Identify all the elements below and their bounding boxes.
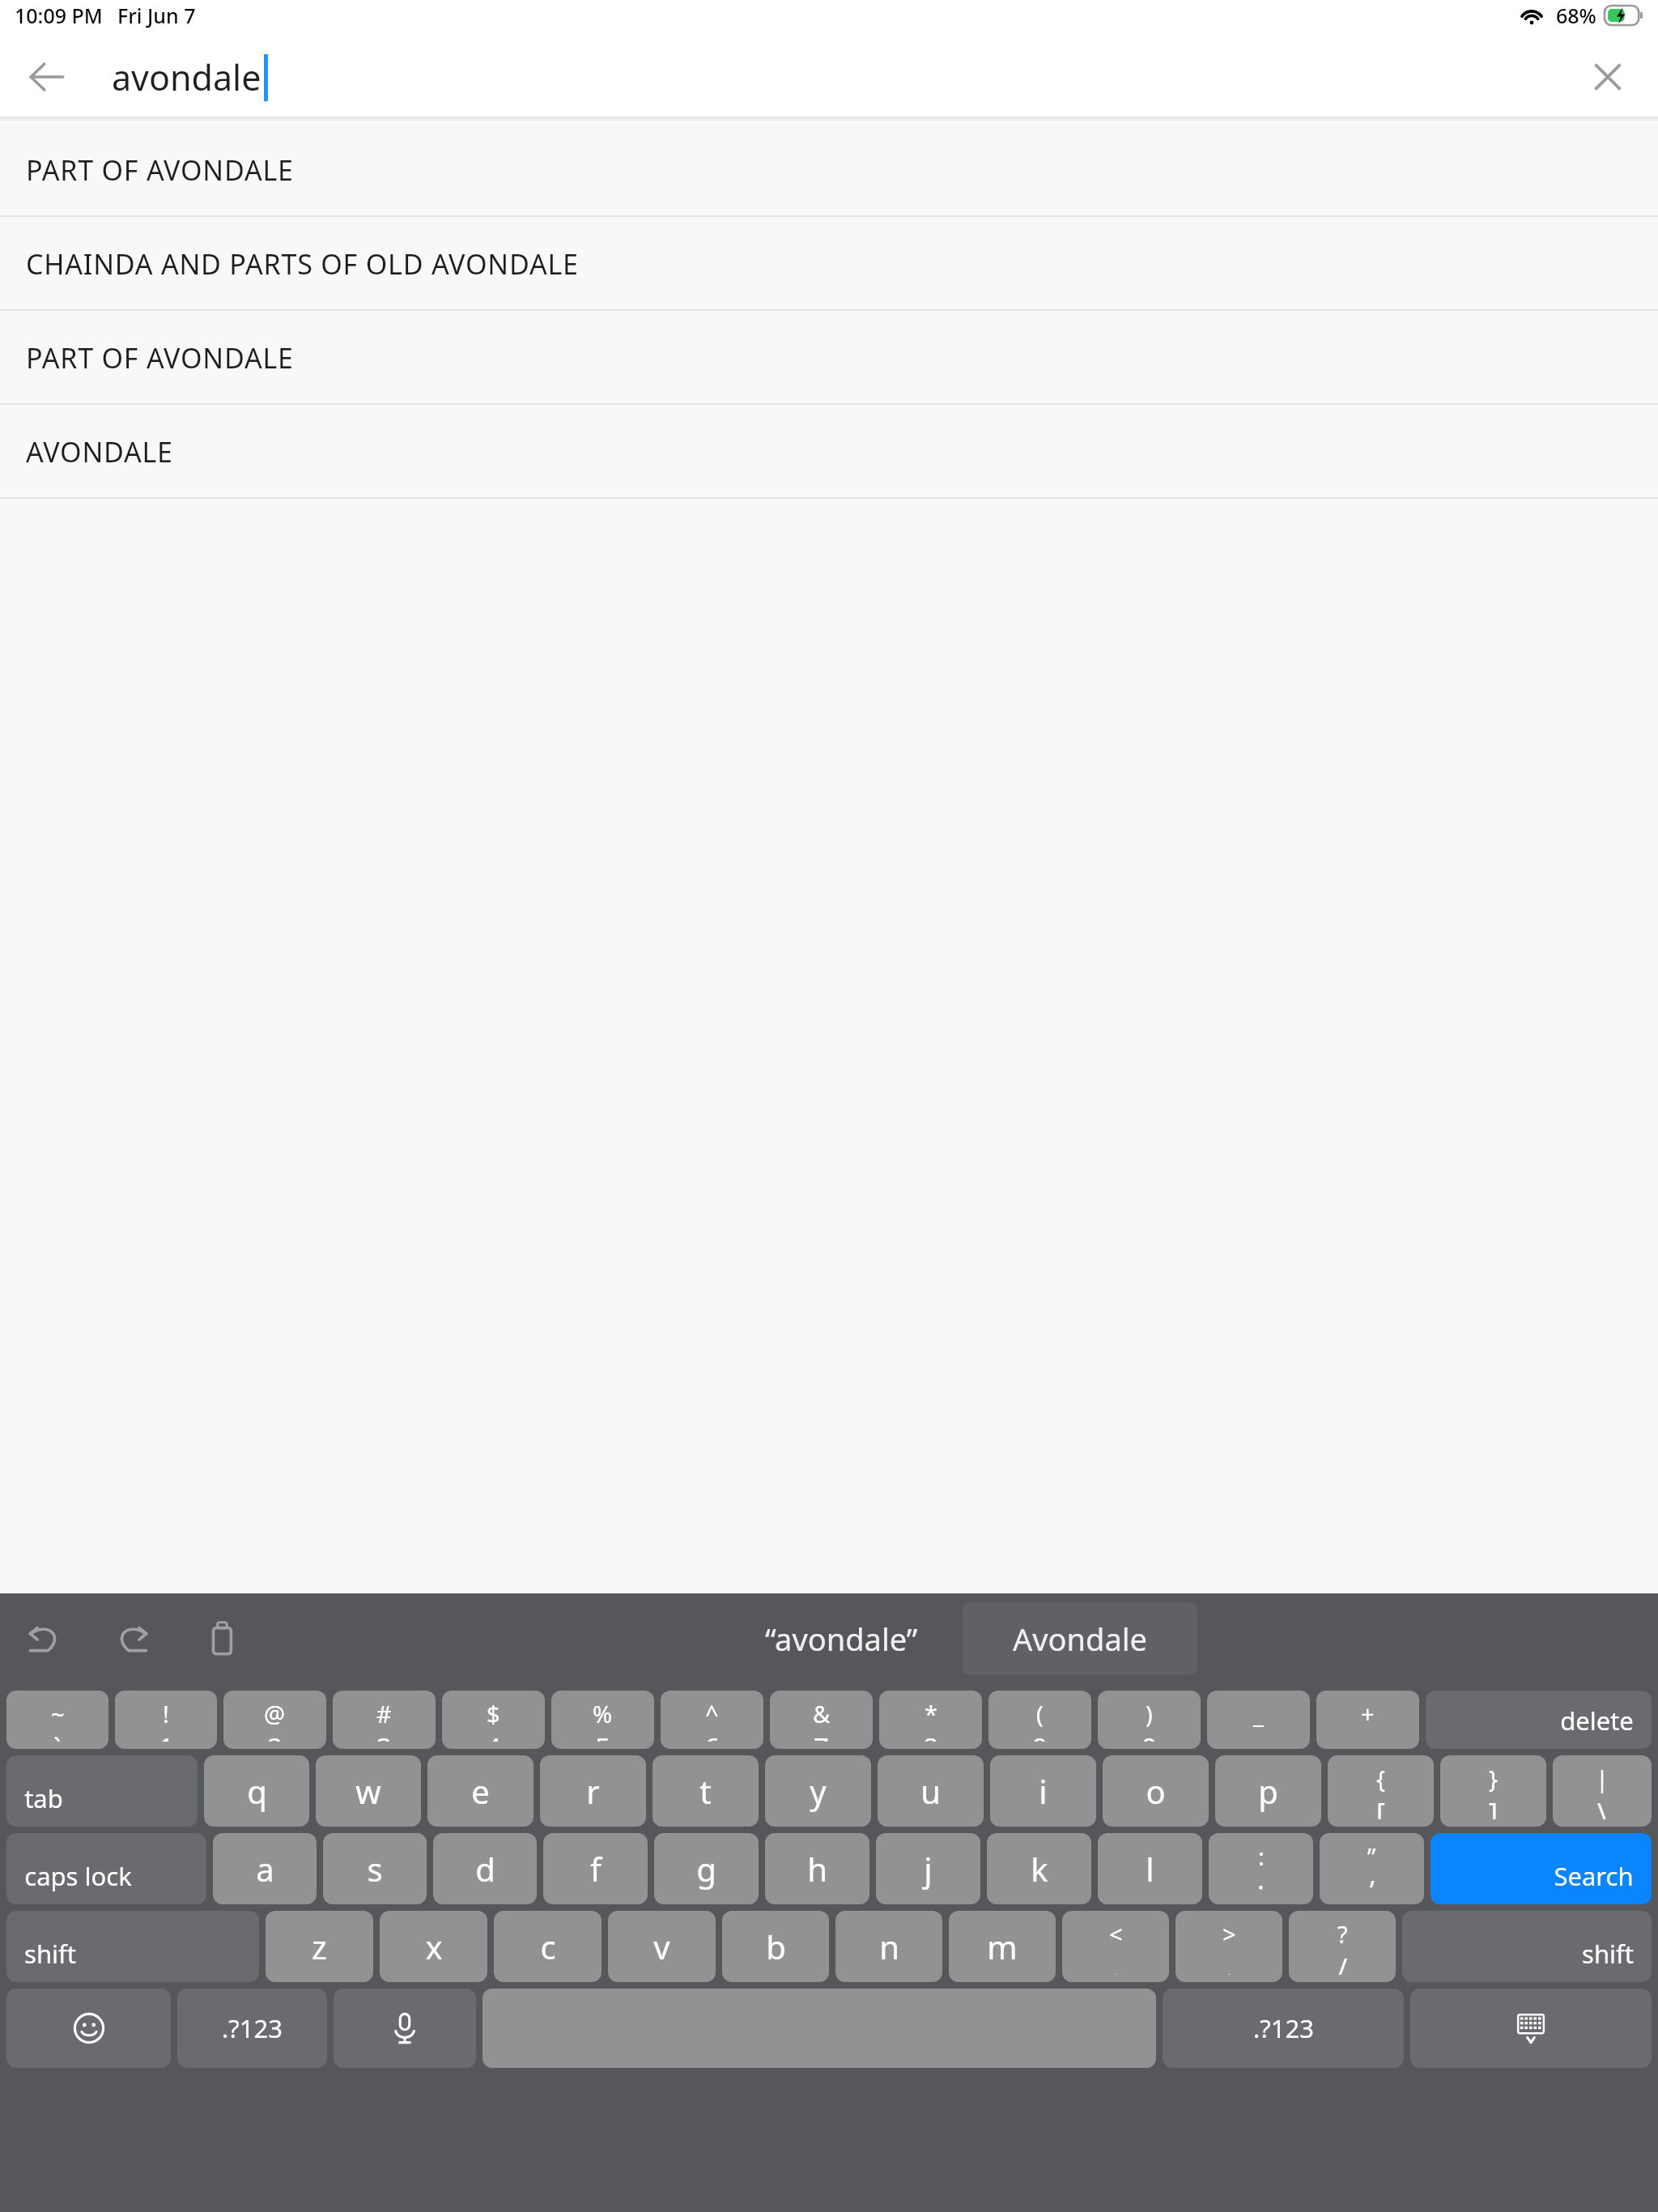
button[interactable]: Redo bbox=[105, 1611, 160, 1666]
staticText: 0 bbox=[1141, 1729, 1157, 1742]
button[interactable]: shift bbox=[1402, 1911, 1652, 1982]
button[interactable]: h bbox=[765, 1833, 869, 1904]
button[interactable]: ? bbox=[1289, 1911, 1396, 1982]
button[interactable]: “avondale” bbox=[720, 1593, 963, 1684]
staticText: q bbox=[247, 1769, 267, 1813]
button[interactable]: tab bbox=[6, 1755, 198, 1827]
staticText: * bbox=[925, 1698, 937, 1729]
button[interactable]: b bbox=[722, 1911, 829, 1982]
button[interactable]: z bbox=[266, 1911, 373, 1982]
button[interactable]: Paste bbox=[196, 1611, 251, 1666]
button[interactable]: Clear search bbox=[1575, 45, 1640, 109]
button[interactable]: : bbox=[1209, 1833, 1313, 1904]
button[interactable]: y bbox=[765, 1755, 871, 1827]
staticText: ! bbox=[163, 1698, 169, 1729]
button[interactable]: e bbox=[427, 1755, 534, 1827]
button[interactable]: v bbox=[608, 1911, 716, 1982]
button[interactable]: _ bbox=[1207, 1691, 1310, 1749]
button[interactable]: i bbox=[990, 1755, 1096, 1827]
button[interactable]: ~ bbox=[6, 1691, 108, 1749]
staticText: . bbox=[1226, 1950, 1233, 1975]
staticText: r bbox=[586, 1769, 600, 1813]
staticText: .?123 bbox=[222, 2011, 283, 2045]
button[interactable]: + bbox=[1316, 1691, 1419, 1749]
button[interactable]: p bbox=[1215, 1755, 1321, 1827]
staticText: .?123 bbox=[1253, 2011, 1314, 2045]
staticText: [ bbox=[1376, 1794, 1385, 1819]
staticText: ; bbox=[1257, 1872, 1265, 1897]
button[interactable]: ( bbox=[988, 1691, 1091, 1749]
button[interactable]: ” bbox=[1320, 1833, 1424, 1904]
button[interactable]: caps lock bbox=[6, 1833, 206, 1904]
button[interactable]: f bbox=[543, 1833, 648, 1904]
button[interactable]: AVONDALE bbox=[0, 405, 1658, 499]
button[interactable]: Hide keyboard bbox=[1410, 1989, 1652, 2068]
button[interactable]: Undo bbox=[16, 1611, 71, 1666]
button[interactable]: ! bbox=[115, 1691, 217, 1749]
button[interactable]: } bbox=[1440, 1755, 1546, 1827]
button[interactable]: PART OF AVONDALE bbox=[0, 311, 1658, 405]
button[interactable]: Avondale bbox=[963, 1602, 1197, 1675]
button[interactable]: g bbox=[654, 1833, 759, 1904]
button[interactable]: * bbox=[879, 1691, 982, 1749]
button[interactable]: shift bbox=[6, 1911, 259, 1982]
button[interactable]: < bbox=[1062, 1911, 1169, 1982]
staticText: > bbox=[1222, 1918, 1236, 1950]
button[interactable]: d bbox=[433, 1833, 537, 1904]
staticText: p bbox=[1258, 1769, 1278, 1813]
staticText: , bbox=[1112, 1950, 1120, 1975]
staticText: Search bbox=[1554, 1859, 1634, 1893]
button[interactable]: n bbox=[835, 1911, 942, 1982]
button[interactable]: > bbox=[1175, 1911, 1282, 1982]
button[interactable]: l bbox=[1098, 1833, 1202, 1904]
staticText: Avondale bbox=[1013, 1618, 1147, 1660]
button[interactable]: ) bbox=[1098, 1691, 1201, 1749]
button[interactable]: a bbox=[213, 1833, 317, 1904]
staticText: u bbox=[920, 1769, 941, 1813]
button[interactable]: x bbox=[380, 1911, 487, 1982]
button[interactable]: & bbox=[770, 1691, 873, 1749]
button[interactable]: q bbox=[204, 1755, 309, 1827]
staticText: # bbox=[376, 1698, 392, 1729]
button[interactable]: | bbox=[1553, 1755, 1652, 1827]
button[interactable]: w bbox=[316, 1755, 421, 1827]
button[interactable]: ^ bbox=[661, 1691, 763, 1749]
staticText: 4 bbox=[486, 1729, 501, 1742]
button[interactable]: r bbox=[540, 1755, 646, 1827]
button[interactable]: j bbox=[876, 1833, 980, 1904]
button[interactable]: o bbox=[1103, 1755, 1209, 1827]
staticText: { bbox=[1376, 1763, 1386, 1794]
staticText: ] bbox=[1489, 1794, 1498, 1819]
staticText: AVONDALE bbox=[26, 433, 173, 470]
button[interactable]: k bbox=[987, 1833, 1091, 1904]
button[interactable]: m bbox=[949, 1911, 1056, 1982]
staticText: y bbox=[810, 1769, 827, 1813]
staticText: @ bbox=[264, 1698, 286, 1729]
button[interactable]: PART OF AVONDALE bbox=[0, 123, 1658, 217]
button[interactable]: s bbox=[323, 1833, 427, 1904]
button[interactable]: c bbox=[494, 1911, 602, 1982]
button[interactable]: Emoji bbox=[6, 1989, 171, 2068]
button[interactable]: % bbox=[551, 1691, 654, 1749]
button[interactable]: .?123 bbox=[1163, 1989, 1404, 2068]
staticText: ) bbox=[1146, 1698, 1153, 1729]
staticText: CHAINDA AND PARTS OF OLD AVONDALE bbox=[26, 245, 579, 283]
staticText: 9 bbox=[1032, 1729, 1048, 1742]
button[interactable]: Dictation bbox=[334, 1989, 476, 2068]
staticText: ~ bbox=[51, 1698, 65, 1729]
button[interactable]: @ bbox=[223, 1691, 326, 1749]
button[interactable]: u bbox=[878, 1755, 984, 1827]
button[interactable]: Back bbox=[16, 46, 78, 108]
button[interactable]: Search bbox=[1431, 1833, 1652, 1904]
button[interactable]: CHAINDA AND PARTS OF OLD AVONDALE bbox=[0, 217, 1658, 311]
staticText: g bbox=[696, 1847, 716, 1891]
button[interactable]: .?123 bbox=[177, 1989, 327, 2068]
button[interactable]: delete bbox=[1426, 1691, 1652, 1749]
button[interactable]: $ bbox=[442, 1691, 545, 1749]
staticText: Fri Jun 7 bbox=[117, 2, 196, 29]
button[interactable]: { bbox=[1328, 1755, 1434, 1827]
button[interactable]: t bbox=[653, 1755, 759, 1827]
button[interactable]: # bbox=[333, 1691, 436, 1749]
